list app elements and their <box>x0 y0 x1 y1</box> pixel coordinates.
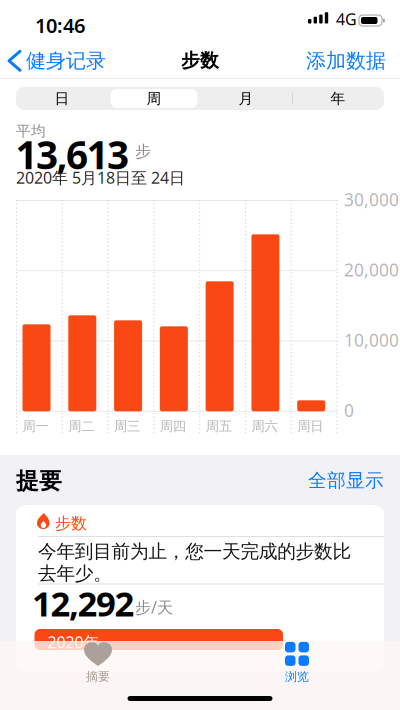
staticText: 周五 <box>206 418 232 434</box>
staticText: 月 <box>238 89 253 107</box>
staticText: 健身记录 <box>26 48 106 73</box>
staticText: 周四 <box>160 418 186 434</box>
button[interactable]: 全部显示 <box>308 469 384 492</box>
staticText: 13,613 <box>15 128 129 180</box>
button[interactable]: 月 <box>202 87 290 110</box>
staticText: 4G <box>336 8 357 30</box>
staticText: 2020年 5月18日至 24日 <box>16 167 185 188</box>
staticText: 去年少。 <box>38 562 112 585</box>
staticText: 步数 <box>181 49 219 72</box>
button[interactable]: 健身记录 <box>9 48 106 73</box>
staticText: 30,000 <box>344 188 399 211</box>
button[interactable]: 周 <box>110 87 198 110</box>
staticText: 添加数据 <box>306 48 386 73</box>
staticText: 周 <box>146 89 161 107</box>
button[interactable]: 年 <box>294 87 382 110</box>
button[interactable]: 添加数据 <box>306 48 386 73</box>
staticText: 步/天 <box>135 596 173 618</box>
staticText: 步 <box>135 141 151 161</box>
staticText: 周六 <box>251 418 277 434</box>
button[interactable]: 日 <box>18 87 106 110</box>
staticText: 20,000 <box>344 258 399 281</box>
staticText: 步数 <box>55 513 87 533</box>
button[interactable]: 浏览 <box>252 640 342 686</box>
button[interactable]: 步数 <box>16 505 384 672</box>
staticText: 日 <box>54 89 69 107</box>
staticText: 提要 <box>16 467 62 495</box>
staticText: 周一 <box>22 418 48 434</box>
staticText: 0 <box>344 399 354 422</box>
staticText: 今年到目前为止，您一天完成的步数比 <box>38 540 351 563</box>
staticText: 年 <box>330 89 345 107</box>
staticText: 10:46 <box>35 12 85 39</box>
button[interactable]: 摘要 <box>53 640 143 686</box>
staticText: 周二 <box>68 418 94 434</box>
staticText: 摘要 <box>86 669 110 684</box>
staticText: 周三 <box>114 418 140 434</box>
staticText: 10,000 <box>344 328 399 351</box>
staticText: 12,292 <box>32 580 134 626</box>
staticText: 2020年 <box>47 631 99 653</box>
staticText: 平均 <box>16 122 46 140</box>
staticText: 浏览 <box>285 669 309 684</box>
staticText: 全部显示 <box>308 469 384 492</box>
staticText: 周日 <box>297 418 323 434</box>
